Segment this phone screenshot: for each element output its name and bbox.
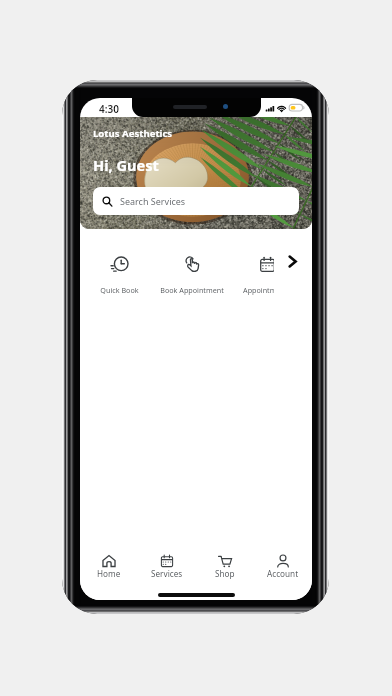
staticText: Search Services (120, 195, 186, 207)
staticText: Book Appointment (160, 285, 224, 295)
staticText: 4:30 (99, 102, 119, 116)
button[interactable]: Account (254, 552, 312, 579)
staticText: Hi, Guest (93, 155, 159, 175)
button[interactable]: More actions (283, 252, 301, 270)
button[interactable]: Services (138, 552, 196, 579)
button[interactable]: Quick Book (83, 244, 155, 295)
staticText: Account (267, 568, 299, 579)
staticText: Quick Book (100, 285, 139, 295)
button[interactable]: Home (80, 552, 138, 579)
staticText: Home (97, 568, 121, 579)
button[interactable]: Shop (196, 552, 254, 579)
staticText: Services (151, 568, 183, 579)
button[interactable]: Book Appointment (156, 244, 228, 295)
button[interactable]: Search Services (93, 187, 299, 215)
staticText: Lotus Aesthetics (93, 127, 173, 140)
staticText: Shop (215, 568, 235, 579)
button[interactable]: Appointments (231, 244, 274, 295)
staticText: Appointments (243, 285, 274, 295)
